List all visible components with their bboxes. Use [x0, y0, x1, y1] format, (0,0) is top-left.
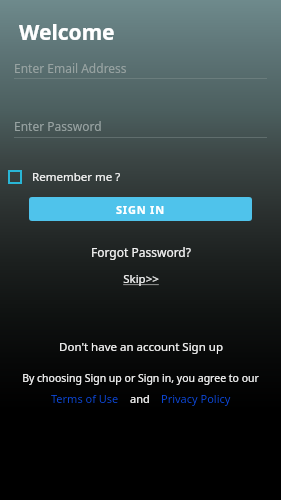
staticText: Remember me ? [32, 169, 121, 185]
staticText: SIGN IN [116, 202, 165, 217]
button[interactable]: Enter Email Address [0, 58, 281, 80]
button[interactable]: Remember me ? [8, 167, 121, 187]
staticText: Enter Email Address [14, 60, 127, 76]
staticText: Welcome [19, 18, 115, 47]
staticText: Enter Password [14, 118, 102, 134]
button[interactable]: Terms of Use [51, 391, 119, 406]
staticText: By choosing Sign up or Sign in, you agre… [22, 371, 259, 385]
button[interactable]: SIGN IN [29, 197, 252, 221]
button[interactable]: Privacy Policy [161, 391, 231, 406]
button[interactable]: Forgot Password? [91, 244, 191, 260]
button[interactable]: Don't have an account Sign up [59, 339, 223, 355]
button[interactable]: Enter Password [0, 116, 281, 138]
button[interactable]: Skip>> [123, 271, 159, 287]
staticText: and [130, 391, 150, 406]
